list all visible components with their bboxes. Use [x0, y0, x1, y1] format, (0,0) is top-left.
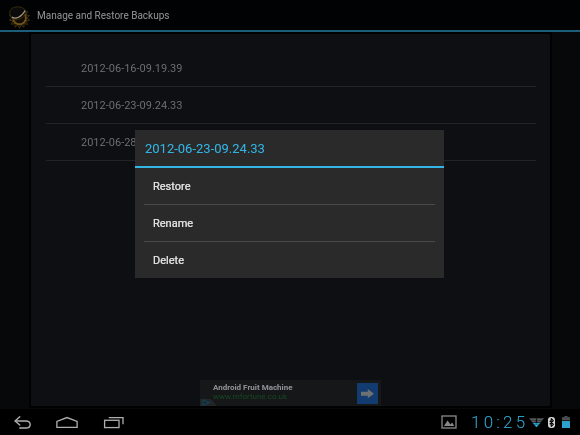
- button[interactable]: Screenshot: [441, 416, 456, 428]
- button[interactable]: Delete: [135, 242, 444, 278]
- staticText: Delete: [153, 254, 184, 267]
- button[interactable]: 2012-06-28-10.11.02: [31, 124, 550, 161]
- staticText: Restore: [153, 180, 191, 193]
- staticText: 2012-06-23-09.24.33: [81, 99, 183, 112]
- button[interactable]: Android Fruit Machine: [200, 380, 381, 406]
- button[interactable]: Restore: [135, 168, 444, 204]
- staticText: 10:25: [471, 412, 529, 432]
- button[interactable]: Home: [51, 409, 83, 435]
- button[interactable]: Open advertisement: [357, 383, 378, 404]
- staticText: 2012-06-28-10.11.02: [81, 136, 183, 149]
- button[interactable]: 2012-06-23-09.24.33: [31, 87, 550, 124]
- button[interactable]: Recent apps: [98, 409, 130, 435]
- staticText: www.mfortune.co.uk: [213, 392, 288, 401]
- staticText: 2012-06-16-09.19.39: [81, 62, 183, 75]
- staticText: Android Fruit Machine: [213, 383, 293, 392]
- staticText: Manage and Restore Backups: [37, 10, 170, 22]
- staticText: 2012-06-23-09.24.33: [145, 141, 265, 156]
- button[interactable]: 2012-06-16-09.19.39: [31, 50, 550, 87]
- button[interactable]: Back: [7, 409, 39, 435]
- button[interactable]: Rename: [135, 205, 444, 241]
- staticText: Rename: [153, 217, 194, 230]
- button[interactable]: [31, 161, 550, 198]
